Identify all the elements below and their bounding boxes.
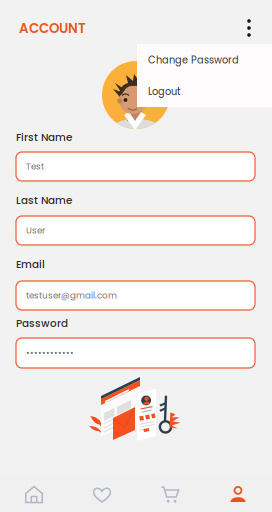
- staticText: First Name: [16, 130, 72, 145]
- staticText: Test: [26, 160, 44, 172]
- staticText: ••••••••••••: [26, 347, 74, 359]
- staticText: Logout: [148, 85, 181, 98]
- staticText: testuser@gmail.com: [26, 289, 117, 301]
- button[interactable]: Favorites: [68, 477, 136, 511]
- button[interactable]: Home: [0, 477, 68, 511]
- button[interactable]: Cart: [136, 477, 204, 511]
- button[interactable]: Logout: [137, 76, 272, 107]
- staticText: Change Password: [148, 53, 239, 67]
- staticText: User: [26, 224, 45, 236]
- staticText: Last Name: [16, 193, 72, 208]
- button[interactable]: Account: [204, 477, 272, 511]
- button[interactable]: More options: [235, 10, 263, 46]
- staticText: Password: [16, 316, 68, 331]
- staticText: ACCOUNT: [19, 19, 86, 38]
- button[interactable]: Change Password: [137, 44, 272, 76]
- staticText: Email: [16, 257, 45, 272]
